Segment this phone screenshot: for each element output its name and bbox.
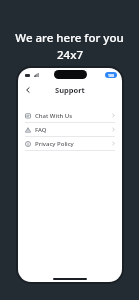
staticText: 24x7 — [57, 47, 83, 63]
button[interactable]: FAQ — [18, 123, 122, 136]
staticText: Support — [55, 85, 85, 95]
staticText: Chat With Us — [35, 112, 73, 120]
button[interactable]: Back — [21, 83, 35, 97]
button[interactable]: Privacy Policy — [18, 137, 122, 150]
staticText: We are here for you — [15, 30, 124, 46]
button[interactable]: Chat With Us — [18, 109, 122, 122]
staticText: 100 — [108, 73, 115, 78]
staticText: FAQ — [35, 126, 47, 134]
staticText: Privacy Policy — [35, 140, 74, 148]
